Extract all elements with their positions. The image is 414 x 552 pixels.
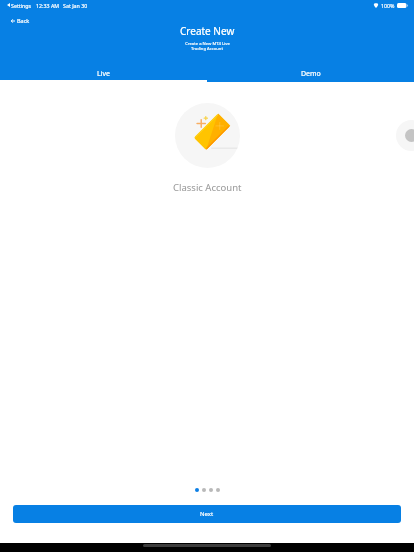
staticText: Trading Account [191, 46, 223, 52]
staticText: Create New [180, 24, 235, 38]
staticText: Live [97, 69, 110, 79]
button[interactable]: Next account type [396, 120, 414, 151]
staticText: Sat Jan 30 [63, 2, 88, 9]
staticText: Classic Account [173, 181, 242, 194]
staticText: 100% [381, 2, 395, 9]
staticText: Back [17, 17, 30, 24]
button[interactable]: Next [13, 505, 401, 523]
button[interactable]: Demo [207, 64, 414, 82]
button[interactable]: Live [0, 64, 207, 82]
staticText: 12:33 AM [36, 2, 60, 9]
button[interactable]: Classic Account [175, 103, 240, 168]
staticText: Settings [11, 2, 32, 9]
staticText: Create a New MT4 Live [185, 41, 230, 47]
staticText: Next [200, 510, 214, 518]
staticText: Demo [301, 69, 321, 79]
button[interactable]: Back [9, 15, 32, 26]
